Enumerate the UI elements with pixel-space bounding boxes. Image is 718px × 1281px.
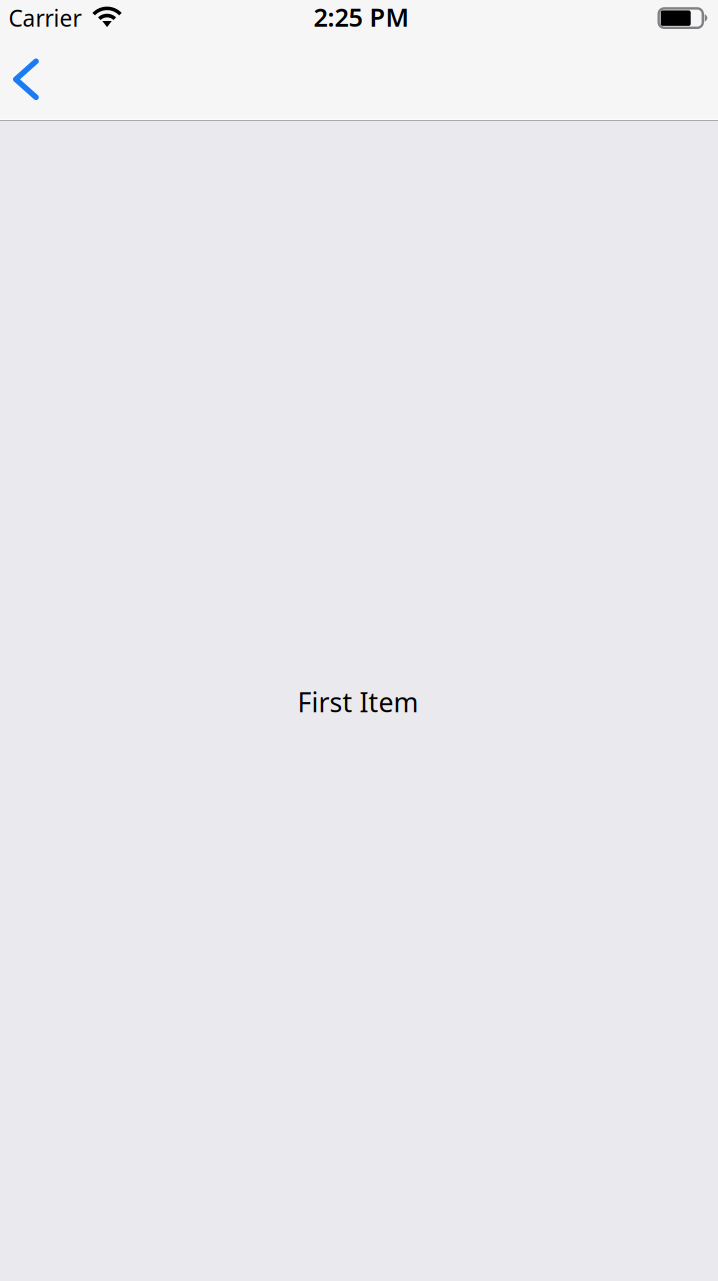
staticText: First Item xyxy=(297,684,418,720)
staticText: 2:25 PM xyxy=(313,0,409,34)
button[interactable]: Back xyxy=(0,40,63,119)
staticText: Carrier xyxy=(8,3,81,33)
